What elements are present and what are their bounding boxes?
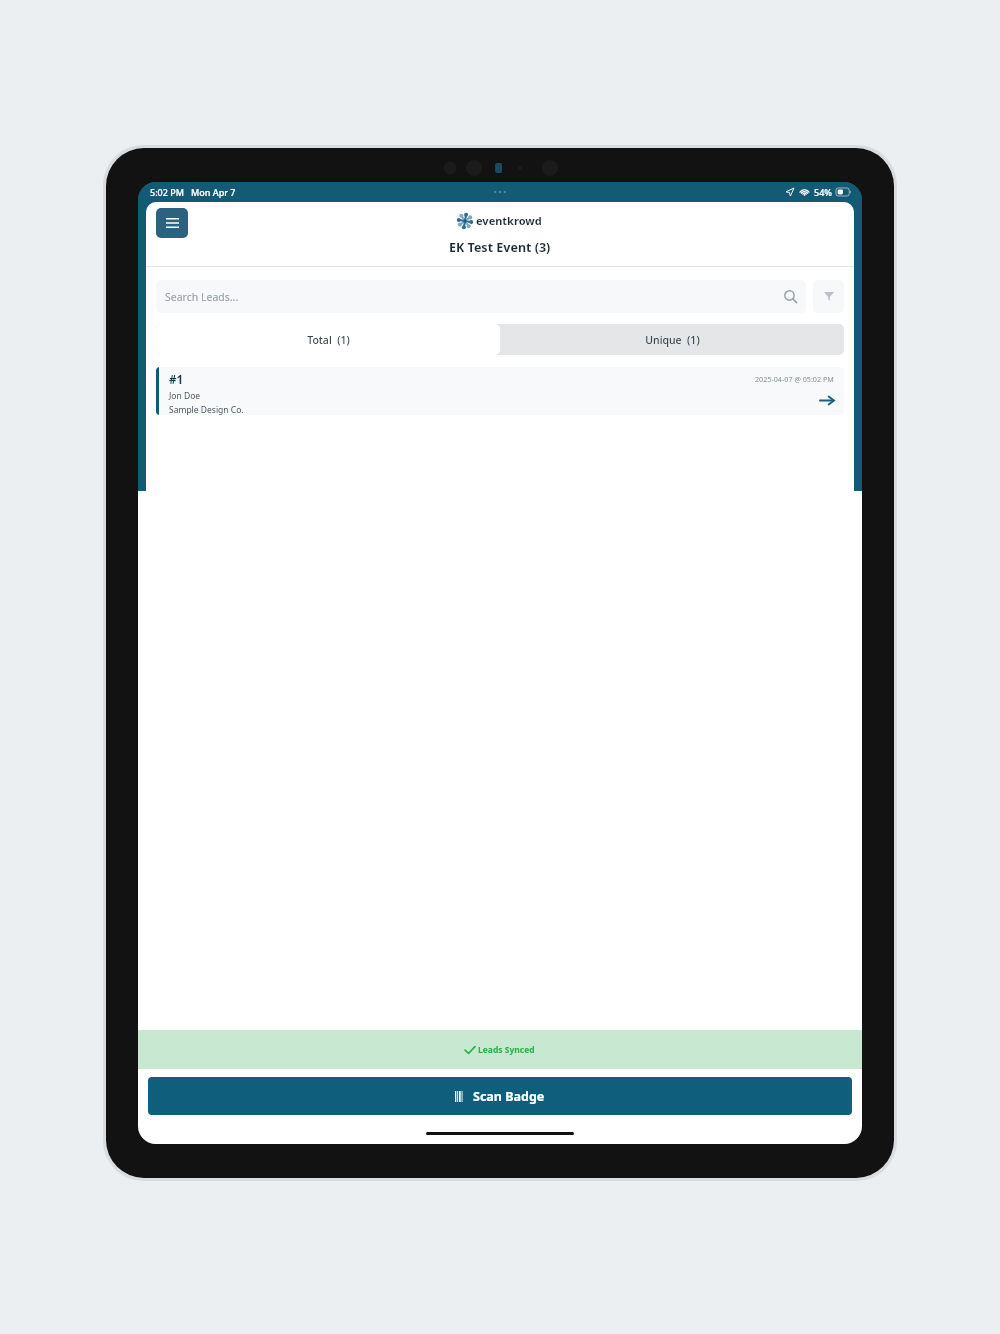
staticText: eventkrowd xyxy=(476,213,542,228)
button[interactable]: Menu xyxy=(156,208,188,238)
staticText: #1 xyxy=(169,372,184,388)
button[interactable]: Scan Badge xyxy=(148,1077,852,1115)
staticText: Total (1) xyxy=(307,333,350,347)
button[interactable]: #1 xyxy=(156,367,844,415)
staticText: Leads Synced xyxy=(478,1044,535,1056)
staticText: 54% xyxy=(814,186,832,198)
staticText: Search Leads... xyxy=(165,290,239,304)
staticText: Sample Design Co. xyxy=(169,404,244,415)
staticText: Scan Badge xyxy=(473,1088,545,1105)
button[interactable]: Search Leads... xyxy=(156,280,806,313)
staticText: 5:02 PM Mon Apr 7 xyxy=(150,186,236,198)
staticText: EK Test Event (3) xyxy=(449,239,551,256)
staticText: Jon Doe xyxy=(169,390,201,402)
staticText: 2025-04-07 @ 05:02 PM xyxy=(755,374,834,384)
button[interactable]: Total (1) xyxy=(156,324,500,355)
staticText: Unique (1) xyxy=(645,333,700,347)
button[interactable]: Unique (1) xyxy=(500,324,844,355)
button[interactable]: Filter xyxy=(813,280,844,313)
